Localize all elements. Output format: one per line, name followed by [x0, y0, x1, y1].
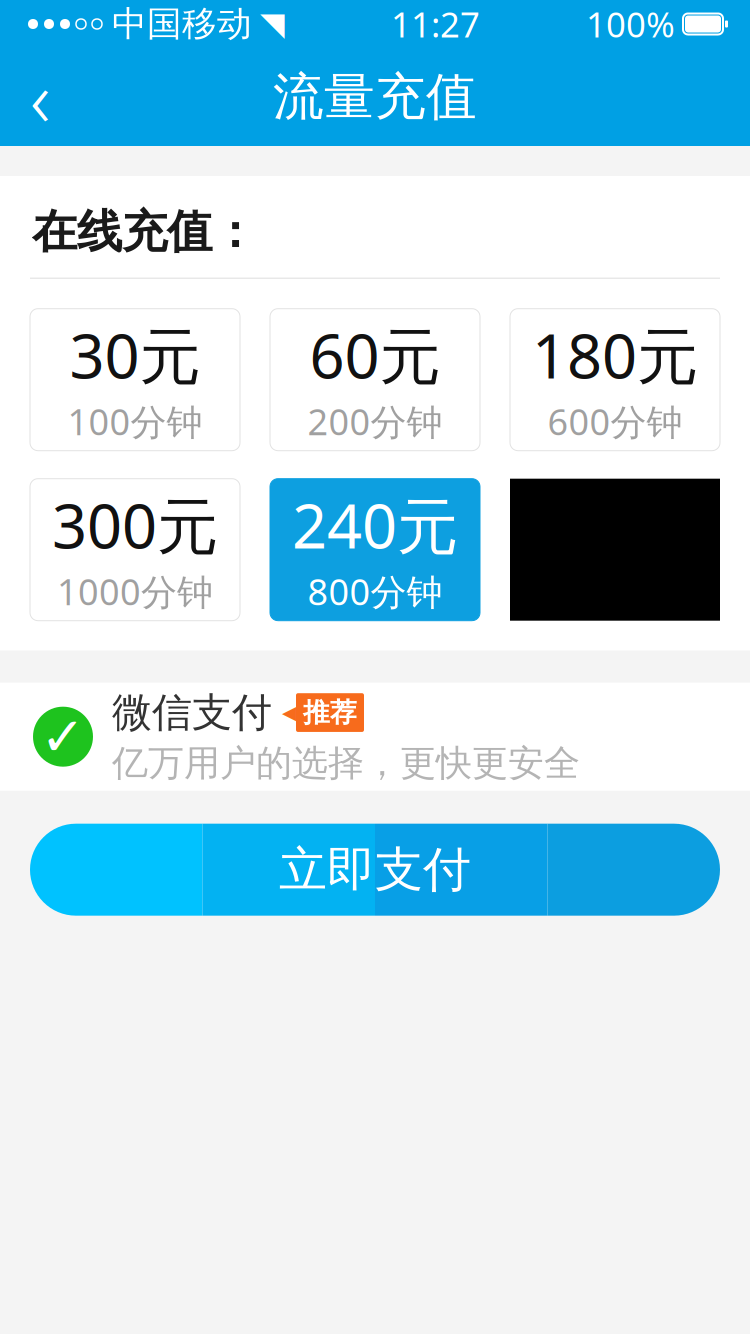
button[interactable]: 60元: [270, 309, 480, 451]
button[interactable]: 300元: [30, 479, 240, 621]
staticText: 推荐: [303, 696, 357, 729]
staticText: 11:27: [391, 1, 480, 47]
button[interactable]: 30元: [30, 309, 240, 451]
staticText: 100%: [586, 1, 675, 47]
staticText: 1000分钟: [57, 567, 213, 615]
button[interactable]: 180元: [510, 309, 720, 451]
button[interactable]: ✓: [0, 683, 750, 791]
staticText: 300元: [52, 484, 218, 565]
staticText: 200分钟: [307, 397, 442, 445]
staticText: 流量充值: [273, 66, 477, 128]
staticText: ✓: [40, 706, 85, 767]
staticText: 240元: [292, 484, 458, 565]
staticText: 600分钟: [547, 397, 682, 445]
staticText: 30元: [69, 314, 200, 395]
staticText: 亿万用户的选择，更快更安全: [112, 741, 580, 785]
staticText: 中国移动: [112, 3, 252, 45]
staticText: 立即支付: [279, 840, 471, 899]
staticText: ◥: [260, 6, 285, 42]
staticText: ◀: [282, 702, 296, 723]
staticText: 100分钟: [67, 397, 202, 445]
button[interactable]: Back: [0, 53, 80, 141]
staticText: 微信支付: [112, 688, 272, 737]
staticText: 800分钟: [307, 567, 442, 615]
staticText: 在线充值：: [32, 204, 257, 260]
button[interactable]: 240元: [270, 479, 480, 621]
staticText: ‹: [30, 46, 50, 148]
staticText: 180元: [532, 314, 698, 395]
button[interactable]: 立即支付: [0, 824, 750, 916]
staticText: 60元: [309, 314, 440, 395]
